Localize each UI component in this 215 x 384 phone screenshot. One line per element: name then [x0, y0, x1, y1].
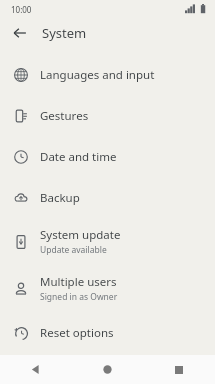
- staticText: Languages and input: [40, 67, 155, 83]
- staticText: Gestures: [40, 108, 89, 124]
- staticText: Signed in as Owner: [40, 291, 118, 303]
- button[interactable]: Back: [8, 21, 32, 45]
- button[interactable]: Reset options: [0, 312, 215, 353]
- button[interactable]: Date and time: [0, 136, 215, 177]
- staticText: Date and time: [40, 149, 117, 165]
- button[interactable]: Gestures: [0, 95, 215, 136]
- staticText: Update available: [40, 244, 107, 256]
- button[interactable]: Recent apps: [143, 355, 215, 384]
- button[interactable]: System update: [0, 218, 215, 265]
- button[interactable]: Languages and input: [0, 54, 215, 95]
- staticText: System: [42, 24, 87, 42]
- button[interactable]: Home: [71, 355, 143, 384]
- staticText: Multiple users: [40, 274, 117, 290]
- button[interactable]: Backup: [0, 177, 215, 218]
- button[interactable]: Back: [0, 355, 71, 384]
- staticText: 10:00: [11, 4, 32, 15]
- button[interactable]: Multiple users: [0, 265, 215, 312]
- staticText: Backup: [40, 190, 80, 206]
- staticText: Reset options: [40, 325, 114, 341]
- staticText: System update: [40, 227, 121, 243]
